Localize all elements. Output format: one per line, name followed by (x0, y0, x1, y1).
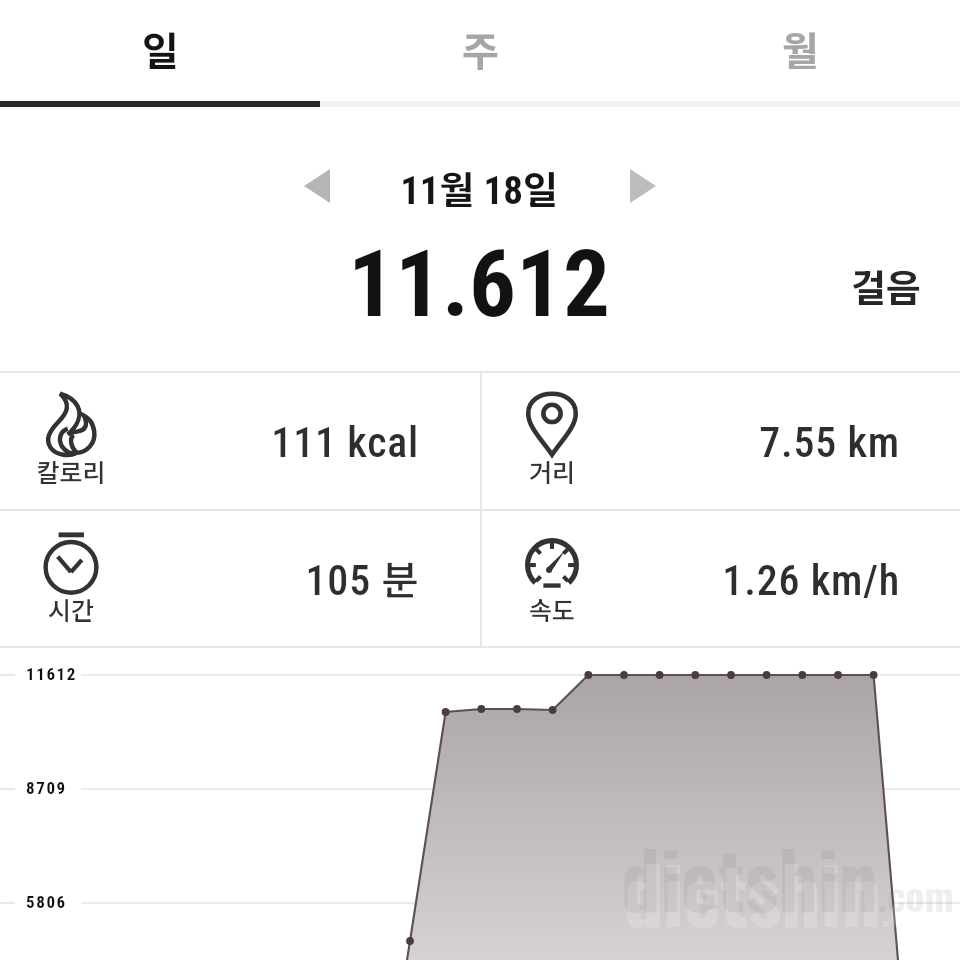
staticText: 105 분 (0, 549, 419, 607)
staticText: 주 (462, 20, 499, 78)
staticText: 시간 (10, 591, 132, 627)
button[interactable]: 칼로리 (0, 373, 479, 509)
button[interactable]: 시간 (0, 511, 479, 647)
button[interactable]: 월 (640, 0, 960, 98)
button[interactable]: 거리 (481, 373, 960, 509)
staticText: 1.26 km/h (481, 556, 900, 605)
staticText: 7.55 km (481, 418, 900, 467)
staticText: 11.612 (169, 230, 789, 339)
staticText: 일 (142, 20, 179, 78)
staticText: 속도 (491, 591, 613, 627)
button[interactable]: Previous day (293, 162, 341, 210)
button[interactable]: 속도 (481, 511, 960, 647)
staticText: 거리 (491, 453, 613, 489)
staticText: 11월 18일 (359, 160, 599, 215)
button[interactable]: Next day (619, 162, 667, 210)
button[interactable]: 일 (0, 0, 320, 98)
staticText: dietshin.com (624, 834, 957, 950)
button[interactable]: 주 (320, 0, 640, 98)
staticText: 5806 (26, 892, 67, 912)
staticText: 걸음 (851, 258, 921, 313)
staticText: dietshin.com (621, 819, 954, 935)
staticText: 칼로리 (10, 453, 132, 489)
staticText: 11612 (26, 664, 77, 684)
staticText: 111 kcal (0, 418, 419, 467)
staticText: 월 (782, 20, 819, 78)
staticText: 8709 (26, 778, 67, 798)
